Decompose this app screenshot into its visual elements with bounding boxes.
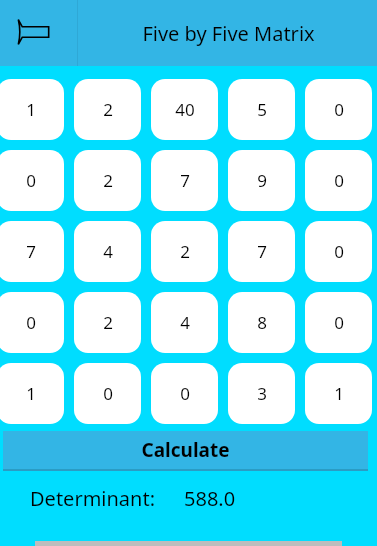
button[interactable]: 0 — [0, 150, 64, 211]
staticText: Determinant: — [30, 485, 156, 511]
button[interactable]: 1 — [305, 363, 372, 424]
button[interactable]: 4 — [151, 292, 218, 353]
staticText: 40 — [175, 98, 195, 121]
staticText: 7 — [26, 240, 36, 263]
button[interactable]: 0 — [0, 292, 64, 353]
staticText: 1 — [26, 382, 36, 405]
button[interactable]: 2 — [74, 292, 141, 353]
button[interactable]: 2 — [74, 79, 141, 140]
staticText: 7 — [257, 240, 267, 263]
button[interactable]: 8 — [228, 292, 295, 353]
button[interactable]: 0 — [305, 79, 372, 140]
button[interactable]: 3 — [228, 363, 295, 424]
button[interactable]: Back — [0, 0, 77, 66]
button[interactable]: 7 — [151, 150, 218, 211]
staticText: 0 — [103, 382, 113, 405]
button[interactable]: 0 — [74, 363, 141, 424]
button[interactable]: 40 — [151, 79, 218, 140]
staticText: 0 — [334, 169, 344, 192]
button[interactable]: 0 — [305, 292, 372, 353]
staticText: 2 — [103, 169, 113, 192]
button[interactable]: 1 — [0, 79, 64, 140]
staticText: 0 — [180, 382, 190, 405]
button[interactable]: 0 — [151, 363, 218, 424]
staticText: 8 — [257, 311, 267, 334]
staticText: 0 — [26, 169, 36, 192]
button[interactable]: 2 — [151, 221, 218, 282]
button[interactable]: 5 — [228, 79, 295, 140]
staticText: 0 — [334, 240, 344, 263]
staticText: 2 — [103, 98, 113, 121]
button[interactable]: 4 — [74, 221, 141, 282]
button[interactable]: Calculate — [3, 431, 368, 469]
staticText: 4 — [180, 311, 190, 334]
staticText: 588.0 — [184, 485, 236, 511]
staticText: 7 — [180, 169, 190, 192]
button[interactable]: 7 — [228, 221, 295, 282]
button[interactable]: 0 — [305, 150, 372, 211]
button[interactable]: 0 — [305, 221, 372, 282]
staticText: 3 — [257, 382, 267, 405]
button[interactable]: 7 — [0, 221, 64, 282]
staticText: 2 — [103, 311, 113, 334]
button[interactable]: 1 — [0, 363, 64, 424]
staticText: 5 — [257, 98, 267, 121]
staticText: 0 — [26, 311, 36, 334]
staticText: 0 — [334, 98, 344, 121]
staticText: 0 — [334, 311, 344, 334]
staticText: 2 — [180, 240, 190, 263]
staticText: 4 — [103, 240, 113, 263]
staticText: 1 — [26, 98, 36, 121]
staticText: Five by Five Matrix — [142, 20, 315, 47]
staticText: 1 — [334, 382, 344, 405]
button[interactable]: 2 — [74, 150, 141, 211]
staticText: 9 — [257, 169, 267, 192]
button[interactable]: 9 — [228, 150, 295, 211]
staticText: Calculate — [141, 437, 230, 463]
